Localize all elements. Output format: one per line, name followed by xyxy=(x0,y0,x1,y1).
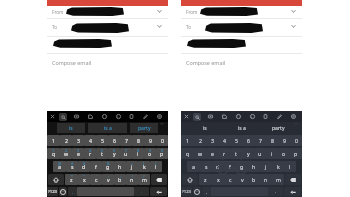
button[interactable]: h xyxy=(114,161,126,172)
button[interactable]: Compose email xyxy=(181,53,302,69)
button[interactable]: d xyxy=(78,161,90,172)
button[interactable]: l xyxy=(150,161,162,172)
button[interactable]: 3 xyxy=(206,135,218,146)
button[interactable]: Enter xyxy=(150,187,167,196)
button[interactable]: z xyxy=(199,174,212,185)
button[interactable]: r xyxy=(218,148,230,159)
button[interactable]: Search xyxy=(58,111,67,122)
button[interactable]: 3 xyxy=(72,135,84,146)
button[interactable]: 6 xyxy=(242,135,254,146)
button[interactable]: j xyxy=(126,161,138,172)
button[interactable]: GIF xyxy=(86,111,95,122)
button[interactable]: Symbols xyxy=(47,187,58,196)
button[interactable]: party xyxy=(264,123,292,133)
button[interactable]: GIF xyxy=(220,111,229,122)
button[interactable]: 0 xyxy=(156,135,168,146)
button[interactable]: party xyxy=(130,123,158,133)
button[interactable]: l xyxy=(284,161,296,172)
button[interactable]: g xyxy=(102,161,114,172)
button[interactable]: p xyxy=(156,148,168,159)
button[interactable]: Search xyxy=(192,111,201,122)
button[interactable]: Backspace xyxy=(285,174,301,185)
button[interactable]: d xyxy=(212,161,224,172)
button[interactable]: Emoji xyxy=(193,187,201,196)
button[interactable]: w xyxy=(60,148,72,159)
button[interactable]: i xyxy=(266,148,278,159)
button[interactable]: Themes xyxy=(114,111,123,122)
button[interactable] xyxy=(181,36,302,53)
button[interactable]: v xyxy=(236,174,248,185)
button[interactable]: j xyxy=(260,161,272,172)
button[interactable]: Comma xyxy=(202,187,211,196)
button[interactable]: z xyxy=(65,174,78,185)
button[interactable]: y xyxy=(108,148,120,159)
button[interactable] xyxy=(47,36,168,53)
button[interactable]: Emoji xyxy=(234,111,243,122)
button[interactable]: 5 xyxy=(230,135,242,146)
button[interactable]: g xyxy=(236,161,248,172)
button[interactable]: 2 xyxy=(194,135,206,146)
button[interactable]: is a xyxy=(88,123,127,133)
button[interactable]: t xyxy=(230,148,242,159)
button[interactable]: Stickers xyxy=(206,111,215,122)
button[interactable]: i xyxy=(132,148,144,159)
button[interactable]: b xyxy=(114,174,126,185)
button[interactable]: o xyxy=(144,148,156,159)
button[interactable]: 4 xyxy=(218,135,230,146)
button[interactable]: 8 xyxy=(132,135,144,146)
button[interactable]: v xyxy=(102,174,114,185)
button[interactable]: Shift xyxy=(182,174,198,185)
button[interactable]: 8 xyxy=(266,135,278,146)
button[interactable]: Comma xyxy=(68,187,77,196)
button[interactable]: x xyxy=(212,174,224,185)
button[interactable]: r xyxy=(84,148,96,159)
button[interactable]: n xyxy=(126,174,138,185)
button[interactable]: 6 xyxy=(108,135,120,146)
button[interactable]: Stickers xyxy=(72,111,81,122)
button[interactable]: Enter xyxy=(284,187,301,196)
button[interactable]: is xyxy=(57,123,85,133)
button[interactable]: m xyxy=(272,174,284,185)
button[interactable]: Compose email xyxy=(47,53,168,69)
button[interactable]: Symbols xyxy=(181,187,192,196)
button[interactable]: w xyxy=(194,148,206,159)
button[interactable]: Shift xyxy=(48,174,64,185)
button[interactable]: 9 xyxy=(144,135,156,146)
button[interactable]: c xyxy=(224,174,236,185)
button[interactable]: Period xyxy=(134,187,149,196)
button[interactable]: f xyxy=(90,161,102,172)
button[interactable]: Settings xyxy=(155,111,164,122)
button[interactable]: is xyxy=(191,123,219,133)
button[interactable]: is a xyxy=(222,123,261,133)
button[interactable]: o xyxy=(278,148,290,159)
button[interactable]: Period xyxy=(268,187,283,196)
button[interactable]: q xyxy=(181,148,194,159)
button[interactable]: 2 xyxy=(60,135,72,146)
button[interactable]: 4 xyxy=(84,135,96,146)
button[interactable]: q xyxy=(47,148,60,159)
button[interactable]: 1 xyxy=(47,135,60,146)
button[interactable]: Backspace xyxy=(151,174,167,185)
button[interactable]: s xyxy=(66,161,78,172)
button[interactable]: Themes xyxy=(248,111,257,122)
button[interactable]: m xyxy=(138,174,150,185)
button[interactable]: Voice input xyxy=(141,111,150,122)
button[interactable]: To xyxy=(181,18,302,36)
button[interactable]: n xyxy=(260,174,272,185)
button[interactable]: t xyxy=(96,148,108,159)
button[interactable]: u xyxy=(254,148,266,159)
button[interactable]: Emoji xyxy=(59,187,67,196)
button[interactable]: a xyxy=(53,161,66,172)
button[interactable]: k xyxy=(138,161,150,172)
button[interactable]: a xyxy=(187,161,200,172)
button[interactable]: Voice input xyxy=(275,111,284,122)
button[interactable]: f xyxy=(224,161,236,172)
button[interactable]: x xyxy=(78,174,90,185)
button[interactable]: 5 xyxy=(96,135,108,146)
button[interactable]: p xyxy=(290,148,302,159)
button[interactable]: Emoji xyxy=(100,111,109,122)
button[interactable]: Clipboard xyxy=(261,111,270,122)
button[interactable]: y xyxy=(242,148,254,159)
